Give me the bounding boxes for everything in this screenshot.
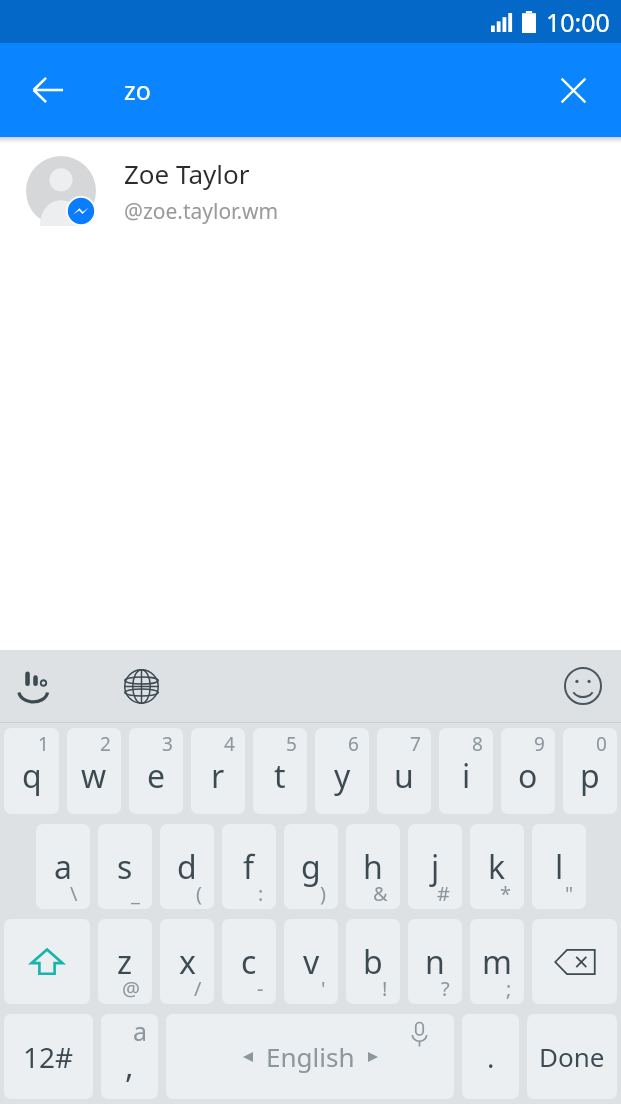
button[interactable]: v (284, 919, 338, 1004)
staticText: # (437, 880, 450, 907)
button[interactable]: a (36, 824, 90, 909)
staticText: 5 (286, 731, 297, 757)
staticText: z (117, 940, 133, 984)
staticText: 10:00 (546, 5, 610, 39)
button[interactable]: q (4, 728, 59, 814)
button[interactable]: k (470, 824, 524, 909)
staticText: 3 (162, 731, 173, 757)
staticText: . (487, 1038, 495, 1076)
button[interactable]: d (160, 824, 214, 909)
staticText: j (431, 845, 440, 889)
staticText: a (133, 1014, 148, 1048)
button[interactable]: j (408, 824, 462, 909)
staticText: q (22, 754, 42, 798)
staticText: 8 (472, 731, 483, 757)
button[interactable]: c (222, 919, 276, 1004)
button[interactable]: Space (166, 1014, 454, 1099)
button[interactable]: e (129, 728, 183, 814)
button[interactable]: Period (462, 1014, 519, 1099)
staticText: l (555, 845, 564, 889)
staticText: x (179, 940, 196, 984)
staticText: @ (122, 975, 140, 1002)
staticText: Zoe Taylor (124, 156, 250, 191)
button[interactable]: Done (527, 1014, 617, 1099)
button[interactable]: Change language (113, 658, 169, 714)
staticText: c (241, 940, 257, 984)
staticText: u (394, 754, 414, 798)
button[interactable]: Backspace (532, 919, 617, 1004)
staticText: m (482, 940, 512, 984)
staticText: / (194, 975, 202, 1002)
staticText: 12# (23, 1038, 74, 1076)
staticText: 0 (596, 731, 607, 757)
button[interactable]: Keyboard menu (6, 658, 62, 714)
button[interactable]: Zoe Taylor (0, 143, 621, 239)
staticText: r (211, 754, 225, 798)
staticText: " (565, 880, 574, 907)
button[interactable]: m (470, 919, 524, 1004)
staticText: Done (539, 1039, 605, 1074)
staticText: h (363, 845, 383, 889)
staticText: ( (196, 880, 202, 907)
staticText: 4 (224, 731, 235, 757)
button[interactable]: u (377, 728, 431, 814)
staticText: ; (506, 975, 512, 1002)
staticText: : (258, 880, 264, 907)
staticText: y (334, 754, 351, 798)
staticText: d (177, 845, 197, 889)
button[interactable]: Clear search (543, 60, 603, 120)
staticText: e (147, 754, 166, 798)
staticText: 9 (534, 731, 545, 757)
button[interactable]: x (160, 919, 214, 1004)
staticText: English (266, 1039, 355, 1074)
staticText: f (243, 845, 255, 889)
staticText: i (462, 754, 471, 798)
button[interactable]: y (315, 728, 369, 814)
staticText: n (425, 940, 445, 984)
button[interactable]: b (346, 919, 400, 1004)
button[interactable]: w (67, 728, 121, 814)
staticText: 1 (38, 731, 49, 757)
button[interactable]: r (191, 728, 245, 814)
staticText: zo (124, 73, 151, 107)
staticText: 7 (410, 731, 421, 757)
staticText: 6 (348, 731, 359, 757)
staticText: v (303, 940, 320, 984)
staticText: _ (131, 880, 140, 907)
staticText: t (274, 754, 286, 798)
staticText: w (81, 754, 107, 798)
button[interactable]: o (501, 728, 555, 814)
button[interactable]: Back (18, 60, 78, 120)
staticText: ! (382, 975, 388, 1002)
staticText: * (500, 880, 512, 907)
button[interactable]: z (98, 919, 152, 1004)
staticText: o (518, 754, 538, 798)
button[interactable]: Symbols (4, 1014, 93, 1099)
staticText: & (373, 880, 388, 907)
button[interactable]: Shift (4, 919, 90, 1004)
staticText: , (125, 1044, 134, 1088)
staticText: p (580, 754, 600, 798)
staticText: @zoe.taylor.wm (124, 197, 279, 226)
button[interactable]: , (101, 1014, 158, 1099)
button[interactable]: i (439, 728, 493, 814)
staticText: ? (441, 975, 450, 1002)
staticText: ) (320, 880, 326, 907)
staticText: - (257, 975, 264, 1002)
staticText: g (301, 845, 321, 889)
button[interactable]: s (98, 824, 152, 909)
button[interactable]: h (346, 824, 400, 909)
staticText: k (488, 845, 506, 889)
button[interactable]: f (222, 824, 276, 909)
staticText: a (54, 845, 72, 889)
button[interactable]: l (532, 824, 586, 909)
staticText: b (363, 940, 383, 984)
button[interactable]: g (284, 824, 338, 909)
staticText: \ (70, 880, 78, 907)
staticText: ' (321, 975, 326, 1002)
button[interactable]: t (253, 728, 307, 814)
button[interactable]: p (563, 728, 617, 814)
button[interactable]: n (408, 919, 462, 1004)
button[interactable]: Emoji (555, 658, 611, 714)
staticText: s (117, 845, 133, 889)
